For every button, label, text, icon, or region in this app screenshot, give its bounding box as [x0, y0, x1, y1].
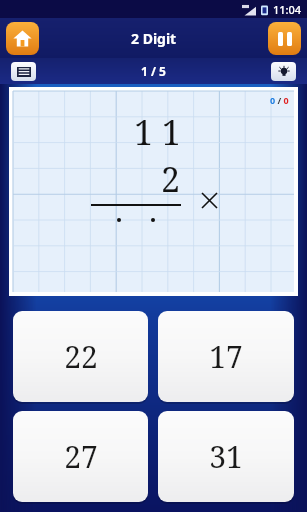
- button[interactable]: Home: [6, 22, 39, 55]
- button[interactable]: Pause: [268, 22, 301, 55]
- staticText: 2: [161, 156, 181, 202]
- button[interactable]: 22: [13, 311, 148, 402]
- button[interactable]: 27: [13, 411, 148, 502]
- button[interactable]: Keyboard input: [11, 62, 36, 81]
- button[interactable]: 17: [158, 311, 294, 402]
- staticText: 1 1: [134, 109, 181, 155]
- button[interactable]: Hint: [271, 62, 296, 81]
- staticText: 22: [64, 336, 98, 377]
- staticText: 0 / 0: [270, 94, 289, 106]
- button[interactable]: 31: [158, 411, 294, 502]
- staticText: 1 / 5: [141, 63, 166, 79]
- staticText: 27: [64, 436, 98, 477]
- staticText: 17: [209, 336, 243, 377]
- staticText: 2 Digit: [131, 29, 177, 48]
- staticText: 31: [209, 436, 243, 477]
- staticText: 11:04: [273, 2, 302, 17]
